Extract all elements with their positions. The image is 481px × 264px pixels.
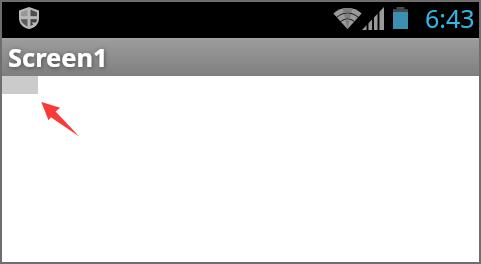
other: Wi-Fi signal <box>333 8 362 29</box>
other: Battery <box>393 7 408 29</box>
staticText: Screen1 <box>8 40 108 75</box>
other: Mobile signal strength <box>362 7 384 30</box>
staticText: 6:43 <box>425 1 475 35</box>
other: Security notification <box>19 7 39 29</box>
